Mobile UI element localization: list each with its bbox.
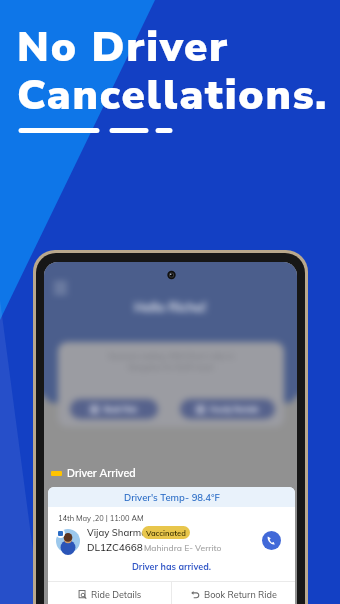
staticText: No Driver [17,19,230,76]
staticText: Cancellations. [17,67,329,124]
staticText: Book Ride [104,405,138,414]
staticText: Book Return Ride [204,589,277,600]
button[interactable]: Book Return Ride [172,582,295,604]
staticText: Vaccinated [146,528,186,537]
staticText: Driver Arrived [67,466,136,479]
staticText: Hello Richa! [134,299,207,315]
staticText: Driver has arrived. [132,561,212,572]
staticText: Driver's Temp- 98.4°F [124,491,220,503]
staticText: Ride Details [91,589,142,600]
button[interactable]: Call driver [262,531,281,550]
staticText: Mahindra E- Verrito [144,542,222,553]
staticText: DL1ZC4668 [87,541,143,554]
staticText: Vijay Sharma [87,526,148,538]
button[interactable]: Ride Details [48,582,171,604]
staticText: Hourly Rentals [210,405,259,414]
staticText: 14th May ,20 | 11:00 AM [58,513,144,522]
